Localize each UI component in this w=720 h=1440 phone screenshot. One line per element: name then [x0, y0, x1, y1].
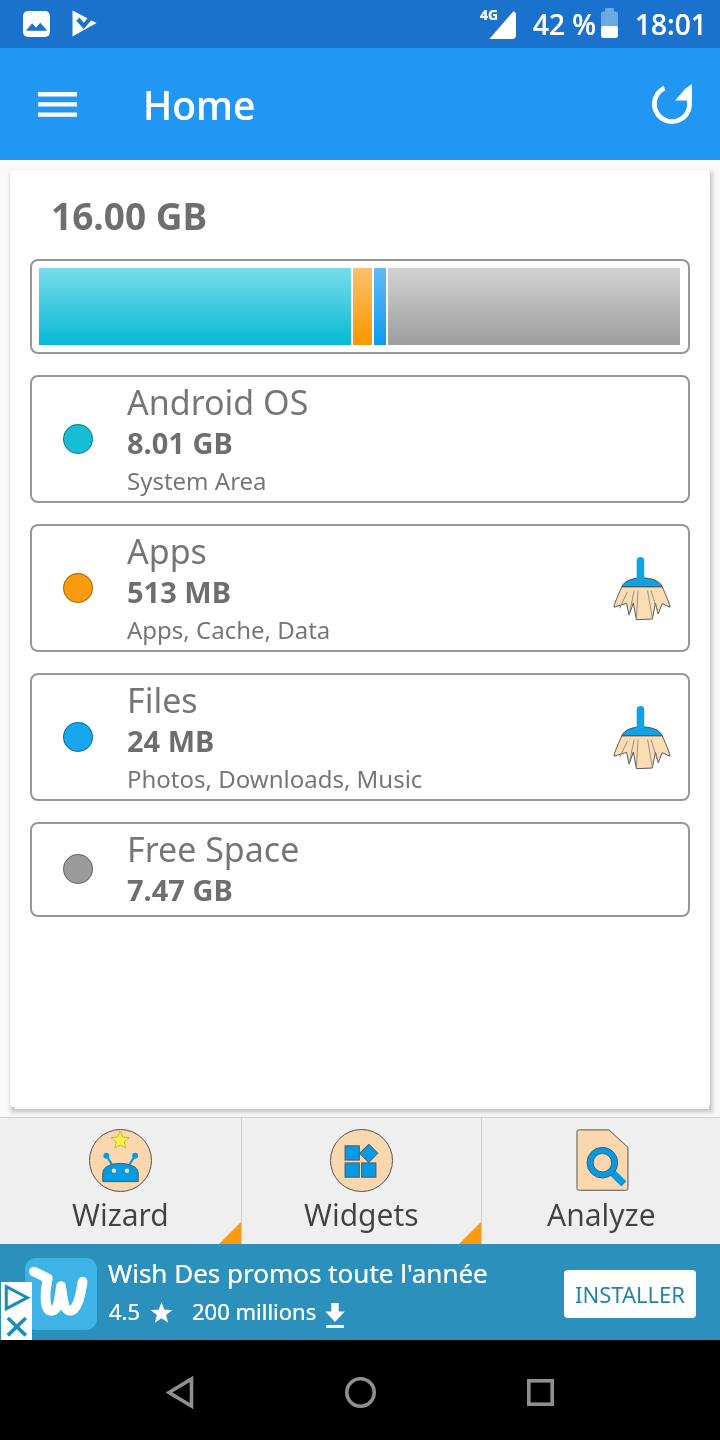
staticText: 200 millions: [192, 1296, 317, 1326]
staticText: Android OS: [127, 379, 309, 425]
staticText: Free Space: [127, 826, 300, 872]
staticText: 24 MB: [127, 721, 215, 760]
button[interactable]: Home: [332, 1364, 388, 1420]
staticText: Widgets: [304, 1194, 419, 1235]
staticText: 42 %: [533, 5, 597, 43]
staticText: Photos, Downloads, Music: [127, 762, 423, 795]
button[interactable]: Apps: [30, 524, 690, 652]
staticText: 7.47 GB: [127, 870, 233, 909]
staticText: Wish Des promos toute l'année: [108, 1255, 488, 1290]
button[interactable]: Menu: [25, 72, 89, 136]
button[interactable]: Free Space: [30, 822, 690, 917]
button[interactable]: Recents: [512, 1364, 568, 1420]
button[interactable]: Widgets: [242, 1118, 481, 1244]
staticText: Wizard: [72, 1194, 169, 1235]
staticText: Analyze: [547, 1194, 656, 1235]
button[interactable]: Back: [152, 1364, 208, 1420]
staticText: 18:01: [635, 5, 707, 43]
button[interactable]: Analyze: [482, 1118, 720, 1244]
button[interactable]: Clean: [614, 705, 670, 769]
button[interactable]: Ad choices: [1, 1282, 32, 1340]
staticText: Home: [143, 78, 256, 131]
button[interactable]: Wizard: [0, 1118, 241, 1244]
staticText: Apps, Cache, Data: [127, 613, 331, 646]
staticText: Files: [127, 677, 198, 723]
button[interactable]: Files: [30, 673, 690, 801]
staticText: System Area: [127, 464, 267, 497]
button[interactable]: Clean: [614, 556, 670, 620]
staticText: 16.00 GB: [51, 190, 208, 240]
staticText: 4.5: [109, 1296, 141, 1326]
staticText: 8.01 GB: [127, 423, 233, 462]
button[interactable]: INSTALLER: [564, 1270, 696, 1318]
staticText: 513 MB: [127, 572, 231, 611]
staticText: 4G: [480, 5, 499, 24]
staticText: Apps: [127, 528, 207, 574]
staticText: INSTALLER: [575, 1279, 685, 1309]
button[interactable]: Android OS: [30, 375, 690, 503]
button[interactable]: Refresh: [642, 74, 702, 134]
